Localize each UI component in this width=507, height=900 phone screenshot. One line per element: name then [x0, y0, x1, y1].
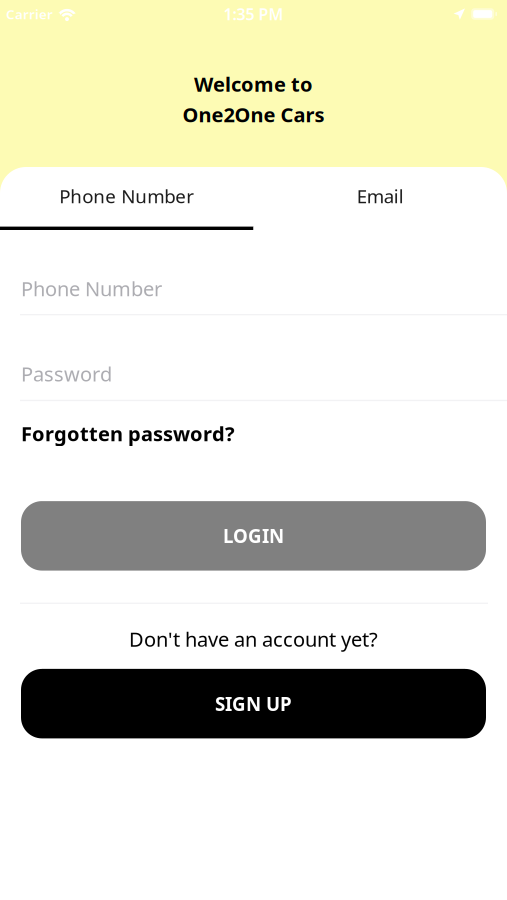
button[interactable]: SIGN UP [21, 669, 486, 738]
staticText: Forgotten password? [21, 420, 235, 447]
button[interactable]: Phone Number [0, 167, 253, 230]
button[interactable]: Password [0, 339, 507, 401]
staticText: Don't have an account yet? [129, 626, 378, 652]
staticText: One2One Cars [182, 101, 324, 128]
staticText: LOGIN [223, 523, 284, 548]
staticText: SIGN UP [215, 691, 292, 716]
staticText: Password [21, 360, 112, 387]
staticText: Email [357, 184, 404, 208]
staticText: 1:35 PM [223, 3, 283, 25]
button[interactable]: Forgotten password? [21, 423, 235, 444]
button[interactable]: Email [253, 167, 507, 230]
button[interactable]: Phone Number [0, 254, 507, 315]
staticText: Welcome to [194, 71, 313, 97]
staticText: Phone Number [59, 184, 194, 208]
button[interactable]: LOGIN [21, 501, 486, 571]
staticText: Carrier [6, 5, 53, 23]
staticText: Phone Number [21, 275, 162, 302]
